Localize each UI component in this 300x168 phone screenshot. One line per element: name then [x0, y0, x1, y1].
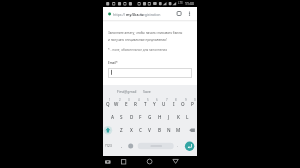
button[interactable]: Y: [150, 100, 159, 108]
button[interactable]: [107, 10, 171, 19]
staticText: 3: [128, 98, 130, 102]
staticText: Save: [143, 89, 151, 94]
staticText: W: [114, 101, 119, 107]
button[interactable]: H: [155, 113, 164, 121]
staticText: Q: [106, 101, 110, 107]
button[interactable]: T: [141, 100, 150, 108]
staticText: 11:33: [185, 1, 194, 6]
staticText: L: [186, 114, 189, 120]
staticText: M: [176, 127, 181, 133]
staticText: H: [158, 114, 162, 120]
staticText: K: [177, 114, 180, 120]
staticText: X: [130, 127, 133, 133]
staticText: /registration: [140, 12, 161, 17]
button[interactable]: C: [136, 126, 145, 134]
staticText: 0: [194, 98, 196, 102]
staticText: Email*: [108, 61, 118, 65]
staticText: Заполните анкету, чтобы начать списывать…: [108, 31, 183, 35]
button[interactable]: E: [122, 100, 131, 108]
button[interactable]: W: [112, 100, 121, 108]
button[interactable]: J: [164, 113, 173, 121]
staticText: 6: [156, 98, 158, 102]
staticText: 7: [166, 98, 168, 102]
staticText: Y: [153, 101, 156, 107]
button[interactable]: V: [145, 126, 154, 134]
staticText: Z: [120, 127, 123, 133]
button[interactable]: Back: [168, 156, 184, 168]
button[interactable]: M: [174, 126, 183, 134]
button[interactable]: F: [136, 113, 145, 121]
staticText: E: [125, 101, 128, 107]
staticText: P: [191, 101, 194, 107]
staticText: ,: [121, 143, 123, 149]
button[interactable]: K: [174, 113, 183, 121]
staticText: 8: [175, 98, 177, 102]
staticText: и получать специальные предложения!: [108, 38, 167, 42]
staticText: B: [158, 127, 162, 133]
button[interactable]: Hide keyboard: [100, 156, 116, 168]
staticText: 9: [185, 98, 187, 102]
staticText: V: [148, 127, 151, 133]
staticText: O: [181, 101, 185, 107]
button[interactable]: G: [145, 113, 154, 121]
button[interactable]: B: [155, 126, 164, 134]
staticText: F: [139, 114, 142, 120]
button[interactable]: P: [188, 100, 197, 108]
staticText: N: [167, 127, 171, 133]
button[interactable]: S: [117, 113, 126, 121]
staticText: I: [173, 101, 175, 107]
staticText: U: [162, 101, 166, 107]
button[interactable]: Home: [142, 156, 158, 168]
button[interactable]: X: [127, 126, 136, 134]
button[interactable]: A: [108, 113, 117, 121]
button[interactable]: L: [183, 113, 192, 121]
staticText: J: [168, 114, 170, 120]
staticText: D: [130, 114, 134, 120]
staticText: T: [144, 101, 147, 107]
button[interactable]: Recent apps: [116, 156, 132, 168]
button[interactable]: I: [169, 100, 178, 108]
button[interactable]: D: [127, 113, 136, 121]
staticText: S: [120, 114, 123, 120]
button[interactable]: U: [159, 100, 168, 108]
button[interactable]: R: [131, 100, 140, 108]
staticText: LTE: [178, 1, 183, 5]
button[interactable]: O: [178, 100, 187, 108]
staticText: A: [111, 114, 115, 120]
button[interactable]: Q: [103, 100, 112, 108]
staticText: R: [134, 101, 137, 107]
staticText: ?123: [105, 144, 112, 148]
staticText: https://: [113, 12, 126, 17]
staticText: 4: [138, 98, 140, 102]
button[interactable]: Z: [117, 126, 126, 134]
staticText: .: [177, 143, 179, 149]
staticText: C: [139, 127, 142, 133]
button[interactable]: [108, 68, 192, 78]
staticText: 1: [109, 98, 111, 102]
button[interactable]: N: [164, 126, 173, 134]
staticText: my.5ka.ru: [126, 12, 144, 17]
staticText: * - поле, обязательное для заполнения: [108, 48, 168, 52]
staticText: 2: [119, 98, 121, 102]
staticText: 5: [147, 98, 149, 102]
staticText: First@gmail: [117, 89, 137, 94]
staticText: G: [148, 114, 152, 120]
